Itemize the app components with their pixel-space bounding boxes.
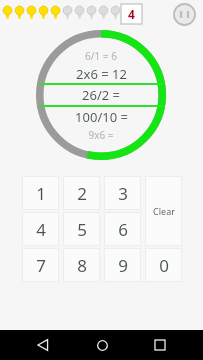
staticText: 2: [77, 182, 87, 205]
button[interactable]: 7: [22, 248, 59, 282]
button[interactable]: 5: [63, 212, 100, 246]
staticText: 1: [36, 182, 46, 205]
button[interactable]: Pause: [173, 3, 196, 26]
button[interactable]: 6: [104, 212, 141, 246]
staticText: 9x6 =: [88, 128, 114, 142]
staticText: 6/1 = 6: [85, 49, 117, 63]
button[interactable]: Back: [28, 330, 58, 360]
staticText: 3: [118, 182, 128, 205]
staticText: 2x6 = 12: [76, 65, 127, 83]
button[interactable]: Recent apps: [145, 330, 175, 360]
staticText: 6: [118, 218, 128, 241]
staticText: 0: [159, 254, 169, 277]
button[interactable]: 4: [22, 212, 59, 246]
staticText: 26/2 =: [82, 86, 120, 104]
staticText: 7: [36, 254, 46, 277]
staticText: 8: [77, 254, 87, 277]
staticText: Clear: [153, 205, 175, 217]
button[interactable]: 2: [63, 176, 100, 210]
button[interactable]: 9: [104, 248, 141, 282]
button[interactable]: 3: [104, 176, 141, 210]
staticText: 4: [36, 218, 46, 241]
button[interactable]: 0: [145, 248, 182, 282]
button[interactable]: 1: [22, 176, 59, 210]
staticText: 100/10 =: [75, 108, 128, 126]
staticText: 9: [118, 254, 128, 277]
button[interactable]: 8: [63, 248, 100, 282]
button[interactable]: Home: [87, 330, 117, 360]
staticText: 5: [77, 218, 87, 241]
button[interactable]: Clear: [145, 176, 182, 246]
staticText: 4: [128, 6, 135, 22]
button[interactable]: 4: [121, 4, 142, 24]
